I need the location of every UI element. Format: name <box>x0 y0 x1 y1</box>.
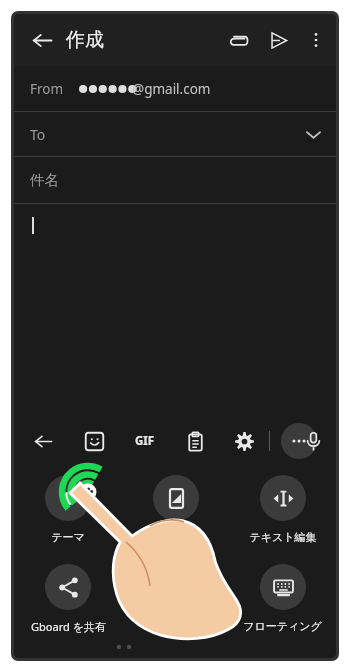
button[interactable]: Voice input <box>296 424 330 458</box>
staticText: 作成 <box>66 28 104 52</box>
button[interactable]: テーマ <box>14 475 122 544</box>
staticText: テキスト編集 <box>249 530 317 544</box>
button[interactable]: Expand recipients <box>298 119 328 149</box>
staticText: To <box>30 125 46 144</box>
staticText: GIF <box>135 433 155 449</box>
button[interactable]: To <box>14 112 336 156</box>
button[interactable]: Clipboard <box>178 424 212 458</box>
button[interactable]: Stickers <box>77 424 111 458</box>
button[interactable]: GIF <box>128 424 162 458</box>
button[interactable]: フローティング <box>229 564 336 633</box>
staticText: @gmail.com <box>132 80 211 98</box>
button[interactable]: Settings <box>227 424 261 458</box>
button[interactable]: ド <box>122 475 229 544</box>
button[interactable]: Attach file <box>218 20 258 60</box>
button[interactable]: 翻訳 <box>122 564 229 633</box>
staticText: テーマ <box>51 530 85 544</box>
button[interactable]: テキスト編集 <box>229 475 336 544</box>
button[interactable]: Back <box>22 20 62 60</box>
button[interactable]: Send <box>258 20 298 60</box>
button[interactable]: Gboard を共有 <box>14 564 122 634</box>
staticText: Gboard を共有 <box>31 619 106 634</box>
button[interactable]: More options <box>298 22 334 58</box>
button[interactable]: Back to keyboard <box>26 424 60 458</box>
staticText: 件名 <box>30 171 59 189</box>
button[interactable] <box>14 204 336 404</box>
button[interactable]: More tools <box>281 423 317 459</box>
staticText: From <box>30 80 64 98</box>
button[interactable]: From <box>14 66 336 111</box>
staticText: フローティング <box>243 619 322 633</box>
button[interactable]: 件名 <box>14 157 336 203</box>
